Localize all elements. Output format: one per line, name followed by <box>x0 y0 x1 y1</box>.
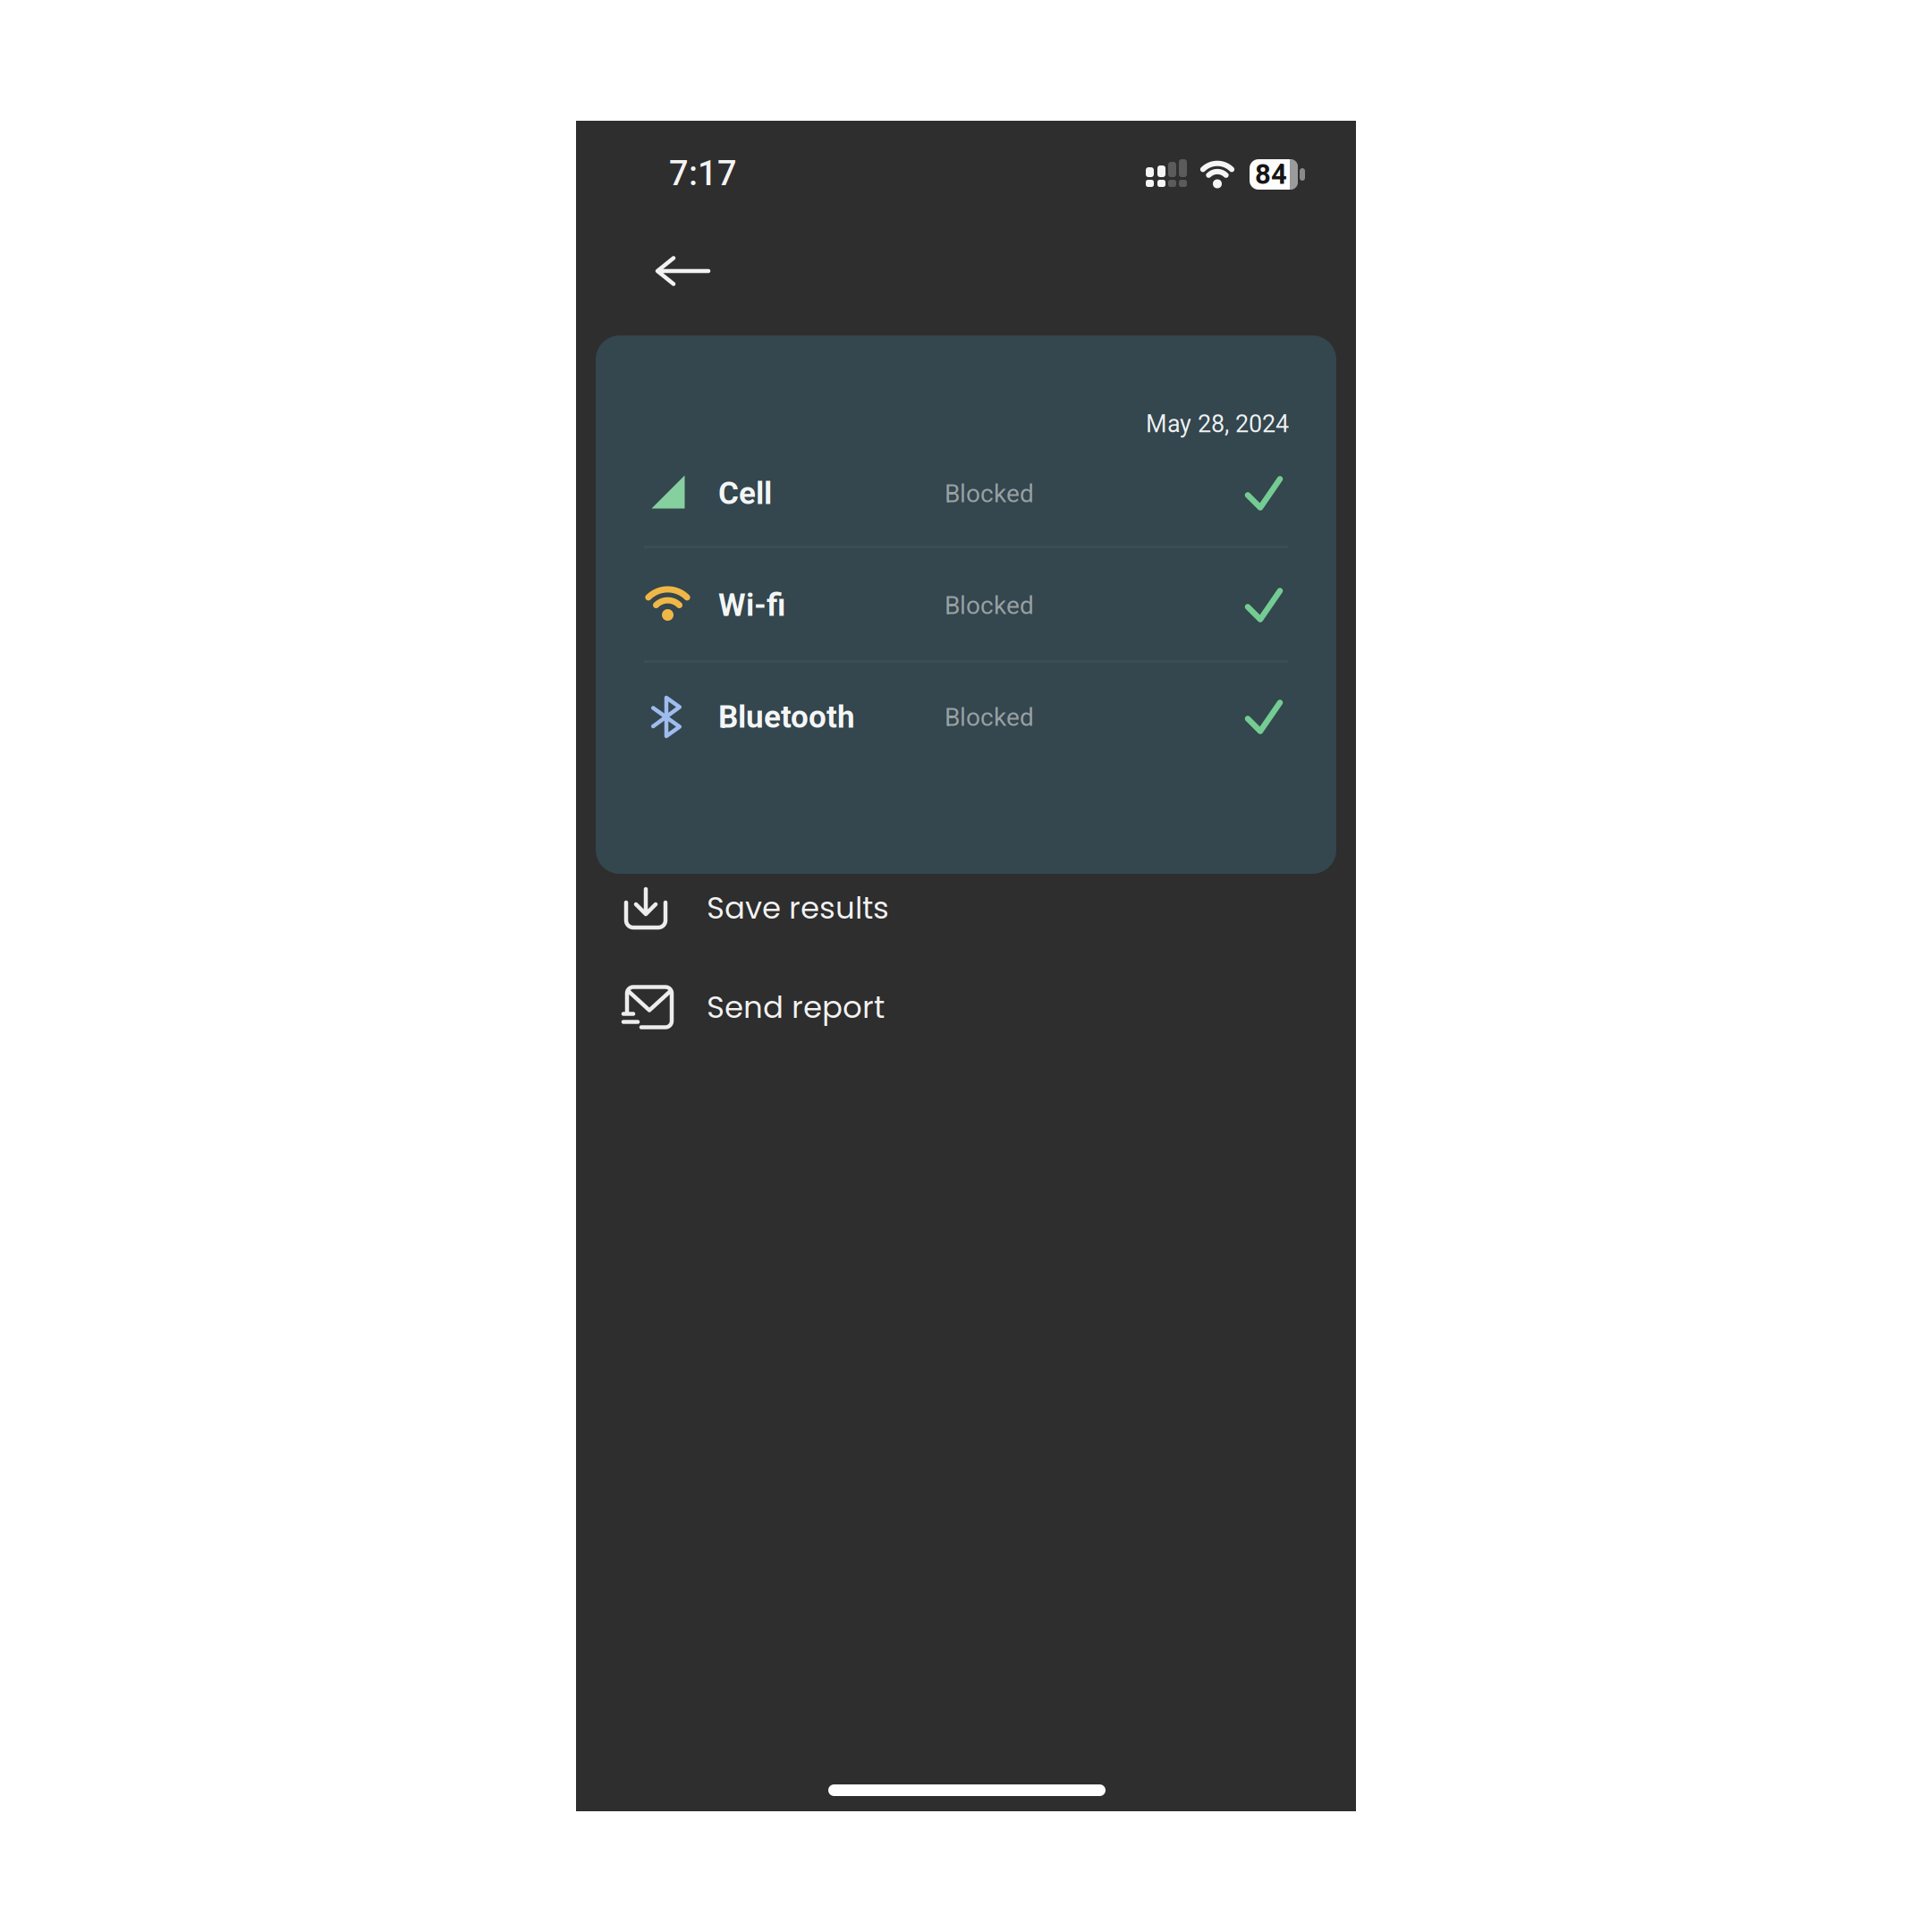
button[interactable]: Save results <box>612 870 1041 945</box>
staticText: 7:17 <box>669 154 737 193</box>
button[interactable]: Send report <box>612 966 1041 1041</box>
staticText: Blocked <box>945 479 1034 508</box>
staticText: May 28, 2024 <box>1146 410 1289 438</box>
staticText: Blocked <box>945 703 1034 732</box>
button[interactable]: Back <box>643 240 723 302</box>
staticText: Wi-fi <box>718 587 785 623</box>
staticText: Cell <box>718 475 772 512</box>
staticText: Send report <box>707 986 885 1028</box>
staticText: Blocked <box>945 591 1034 620</box>
staticText: Save results <box>707 887 889 929</box>
staticText: Bluetooth <box>718 699 855 735</box>
staticText: 84 <box>1255 158 1287 191</box>
